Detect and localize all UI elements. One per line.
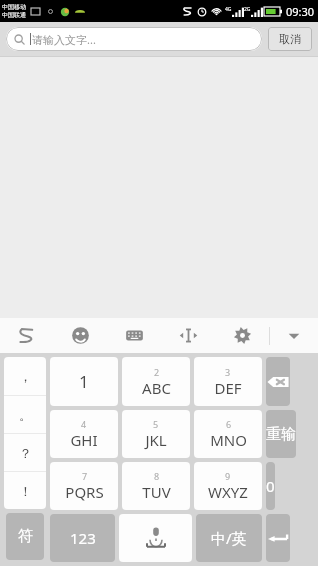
button[interactable]: 请输入文字... — [6, 27, 262, 51]
staticText: 5 — [153, 418, 159, 430]
staticText: 重输 — [266, 425, 296, 444]
button[interactable]: ！ — [4, 472, 46, 509]
button[interactable]: Enter — [266, 514, 290, 562]
button[interactable]: 2 — [122, 357, 190, 406]
button[interactable]: 0 — [266, 462, 275, 510]
staticText: 中国移动 — [2, 3, 26, 11]
button[interactable]: Move cursor — [161, 318, 215, 353]
button[interactable]: 5 — [122, 410, 190, 458]
staticText: 。 — [19, 407, 32, 423]
staticText: ！ — [19, 483, 32, 499]
staticText: 中国联通 — [2, 11, 26, 19]
staticText: GHI — [70, 430, 98, 450]
staticText: 9 — [225, 470, 231, 482]
button[interactable]: Settings — [215, 318, 269, 353]
button[interactable]: 9 — [194, 462, 262, 510]
staticText: 3 — [225, 366, 231, 378]
staticText: ？ — [19, 445, 32, 461]
button[interactable]: ， — [4, 357, 46, 395]
button[interactable]: 123 — [50, 514, 115, 562]
button[interactable]: 中/英 — [196, 514, 262, 562]
button[interactable]: 重输 — [266, 410, 296, 458]
button[interactable]: 1 — [50, 357, 118, 406]
staticText: 1 — [79, 370, 89, 393]
button[interactable]: 7 — [50, 462, 118, 510]
staticText: ABC — [142, 378, 171, 398]
staticText: 8 — [154, 470, 160, 482]
button[interactable]: 取消 — [268, 27, 312, 51]
button[interactable]: Sogou input method — [0, 318, 53, 353]
staticText: 中/英 — [211, 528, 247, 548]
button[interactable]: 4 — [50, 410, 118, 458]
button[interactable]: 8 — [122, 462, 190, 510]
staticText: TUV — [142, 482, 171, 502]
staticText: WXYZ — [208, 482, 248, 502]
button[interactable]: 3 — [194, 357, 262, 406]
button[interactable]: 符 — [6, 513, 44, 560]
staticText: 0 — [266, 476, 275, 496]
staticText: MNO — [210, 430, 247, 450]
button[interactable]: 6 — [194, 410, 262, 458]
button[interactable]: Hide keyboard — [270, 318, 318, 353]
staticText: 2 — [154, 366, 160, 378]
button[interactable]: ？ — [4, 434, 46, 471]
button[interactable]: Backspace — [266, 357, 290, 406]
staticText: JKL — [145, 430, 167, 450]
staticText: 请输入文字... — [32, 32, 96, 47]
staticText: 123 — [70, 528, 96, 548]
button[interactable]: Space, voice input — [119, 514, 192, 562]
staticText: ， — [19, 368, 32, 384]
staticText: 09:30 — [286, 4, 315, 19]
button[interactable]: Keyboard layout — [107, 318, 161, 353]
staticText: DEF — [214, 378, 242, 398]
staticText: 4 — [81, 418, 87, 430]
staticText: 2G — [244, 6, 251, 13]
staticText: 符 — [18, 527, 33, 546]
staticText: 7 — [82, 470, 88, 482]
button[interactable]: Emoji — [53, 318, 107, 353]
button[interactable]: 。 — [4, 396, 46, 433]
staticText: PQRS — [65, 482, 104, 502]
staticText: 取消 — [279, 32, 301, 46]
staticText: 6 — [226, 418, 232, 430]
staticText: 4G — [225, 6, 232, 13]
